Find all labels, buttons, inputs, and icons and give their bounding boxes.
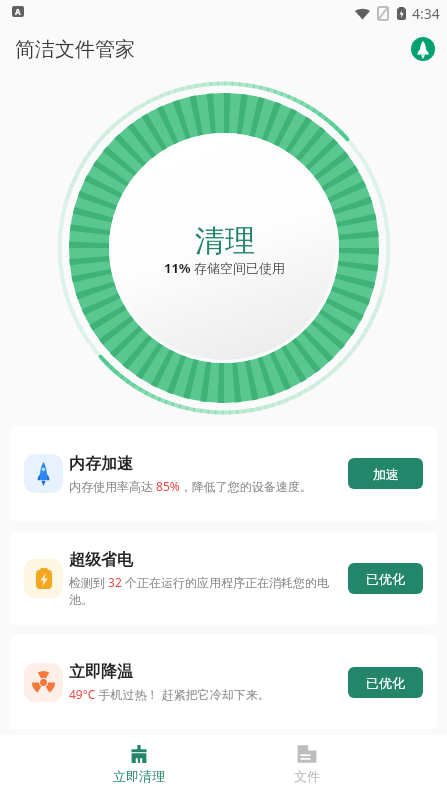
staticText: 11% 存储空间已使用: [164, 259, 285, 277]
button[interactable]: 立即降温: [10, 635, 437, 729]
button[interactable]: Profile: [411, 37, 435, 61]
button[interactable]: 立即清理: [95, 741, 183, 788]
staticText: 文件: [294, 768, 320, 784]
staticText: 49°C 手机过热！ 赶紧把它冷却下来。: [69, 686, 270, 702]
staticText: 内存使用率高达 85%，降低了您的设备速度。: [69, 478, 312, 494]
staticText: 超级省电: [69, 550, 133, 570]
staticText: 4:34: [412, 4, 440, 23]
staticText: 加速: [373, 466, 399, 482]
staticText: 已优化: [366, 571, 405, 587]
staticText: 已优化: [366, 675, 405, 691]
staticText: A: [15, 6, 21, 17]
button[interactable]: 已优化: [348, 563, 423, 594]
button[interactable]: 超级省电: [10, 532, 437, 625]
button[interactable]: 文件: [263, 741, 351, 788]
button[interactable]: 加速: [348, 458, 423, 489]
staticText: 立即清理: [113, 768, 165, 784]
staticText: 检测到 32 个正在运行的应用程序正在消耗您的电池。: [69, 574, 338, 607]
staticText: 内存加速: [69, 454, 133, 474]
button[interactable]: 已优化: [348, 667, 423, 698]
button[interactable]: 内存加速: [10, 426, 437, 521]
staticText: 清理: [195, 222, 255, 260]
staticText: 简洁文件管家: [15, 37, 135, 62]
staticText: 立即降温: [69, 662, 133, 682]
